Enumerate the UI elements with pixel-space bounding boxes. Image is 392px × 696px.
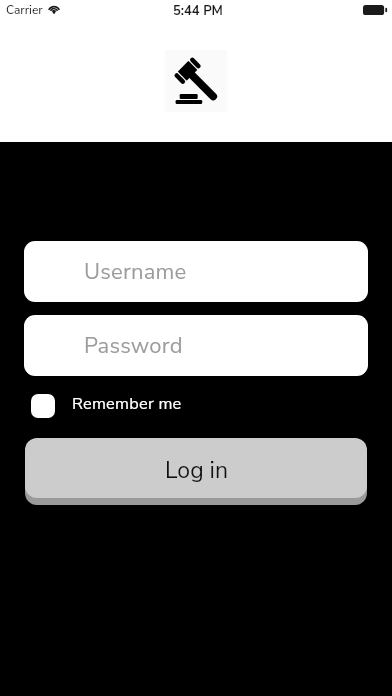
other: App logo xyxy=(165,50,227,112)
other: Wi-Fi xyxy=(48,3,60,13)
staticText: Log in xyxy=(165,455,228,486)
staticText: Carrier xyxy=(6,2,43,18)
button[interactable]: Remember me xyxy=(31,392,182,416)
staticText: Password xyxy=(84,331,183,361)
staticText: Remember me xyxy=(72,393,182,415)
staticText: Username xyxy=(84,257,187,287)
button[interactable]: Log in xyxy=(25,438,367,498)
staticText: 5:44 PM xyxy=(173,2,223,20)
button[interactable]: Password xyxy=(24,315,368,376)
button[interactable]: Username xyxy=(24,241,368,302)
